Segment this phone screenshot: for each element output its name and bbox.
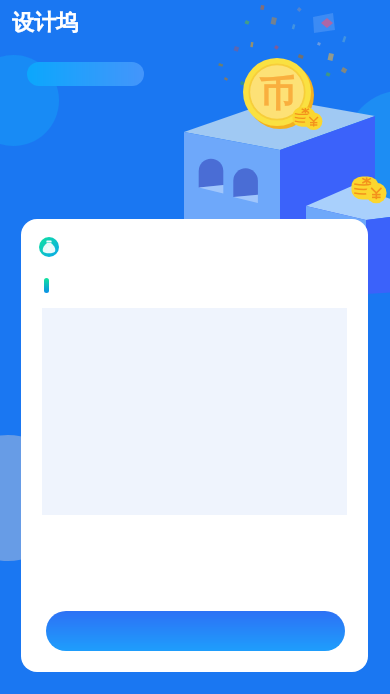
button[interactable] [46,611,345,651]
button[interactable]: Wallet [39,237,59,257]
staticText: 设计坞 [12,9,78,37]
staticText: 币 [259,71,295,113]
